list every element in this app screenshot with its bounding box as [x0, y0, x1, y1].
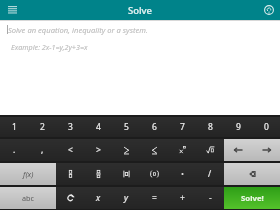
staticText: y	[124, 192, 128, 204]
button[interactable]: ,	[28, 139, 56, 161]
staticText: 3	[68, 121, 73, 133]
button[interactable]: f(x)	[0, 163, 56, 185]
button[interactable]: Less than or equal	[112, 139, 140, 161]
staticText: >	[96, 144, 101, 156]
button[interactable]: abc	[0, 187, 56, 209]
button[interactable]: Reset	[56, 187, 84, 209]
button[interactable]: x	[84, 187, 112, 209]
button[interactable]: Help	[258, 0, 280, 20]
button[interactable]: +	[168, 187, 196, 209]
staticText: 2	[40, 121, 45, 133]
button[interactable]: Solve!	[224, 187, 280, 209]
button[interactable]: -	[196, 187, 224, 209]
button[interactable]: 4	[84, 117, 112, 137]
button[interactable]: =	[140, 187, 168, 209]
staticText: 0	[264, 121, 269, 133]
staticText: 8	[208, 121, 213, 133]
staticText: <	[68, 144, 73, 156]
button[interactable]: 7	[168, 117, 196, 137]
button[interactable]: Absolute value	[112, 163, 140, 185]
button[interactable]: 9	[224, 117, 252, 137]
button[interactable]: 5	[112, 117, 140, 137]
button[interactable]: >	[84, 139, 112, 161]
button[interactable]: 8	[196, 117, 224, 137]
staticText: /	[208, 168, 212, 180]
staticText: Solve	[0, 4, 280, 17]
staticText: Example: 2x-1=y,2y+3=x	[11, 42, 88, 52]
button[interactable]: Fraction	[84, 163, 112, 185]
staticText: 9	[236, 121, 241, 133]
button[interactable]: 6	[140, 117, 168, 137]
button[interactable]: Menu	[0, 0, 24, 20]
button[interactable]: .	[0, 139, 28, 161]
staticText: x	[96, 192, 101, 204]
button[interactable]: Left	[224, 139, 252, 161]
button[interactable]: <	[56, 139, 84, 161]
button[interactable]: Parentheses	[140, 163, 168, 185]
button[interactable]: /	[196, 163, 224, 185]
staticText: 6	[152, 121, 157, 133]
button[interactable]: y	[112, 187, 140, 209]
button[interactable]: Greater than or equal	[140, 139, 168, 161]
button[interactable]: Square root	[196, 139, 224, 161]
button[interactable]: 3	[56, 117, 84, 137]
button[interactable]: Subscript	[56, 163, 84, 185]
staticText: Solve!	[241, 193, 264, 204]
staticText: f(x)	[23, 169, 34, 179]
staticText: 5	[124, 121, 129, 133]
staticText: 1	[12, 121, 17, 133]
staticText: abc	[22, 193, 34, 203]
staticText: +	[180, 192, 185, 204]
button[interactable]: Multiply	[168, 163, 196, 185]
button[interactable]: Power	[168, 139, 196, 161]
staticText: 7	[180, 121, 185, 133]
staticText: 4	[96, 121, 101, 133]
staticText: ,	[41, 144, 44, 156]
staticText: .	[13, 144, 16, 156]
button[interactable]: Right	[252, 139, 280, 161]
button[interactable]: 2	[28, 117, 56, 137]
staticText: =	[152, 192, 157, 204]
staticText: Solve an equation, inequality or a syste…	[8, 25, 148, 35]
staticText: -	[209, 192, 212, 204]
button[interactable]: Backspace	[224, 163, 280, 185]
button[interactable]: 1	[0, 117, 28, 137]
button[interactable]: 0	[252, 117, 280, 137]
